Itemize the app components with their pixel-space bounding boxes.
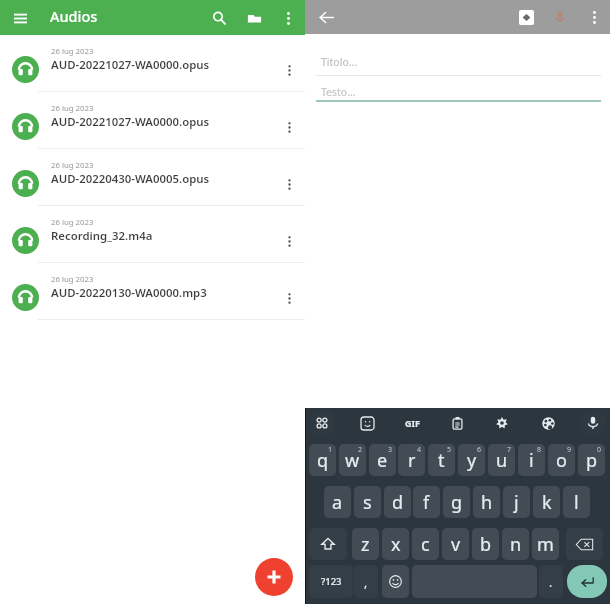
staticText: Audios — [50, 6, 98, 26]
staticText: , — [364, 574, 368, 590]
button[interactable]: h — [473, 486, 500, 518]
button[interactable]: o — [548, 444, 575, 476]
button[interactable]: u — [488, 444, 515, 476]
button[interactable]: Item options — [277, 58, 301, 82]
staticText: h — [481, 490, 493, 515]
button[interactable]: g — [443, 486, 470, 518]
button[interactable]: Add — [255, 558, 293, 596]
button[interactable]: 26 lug 2023 — [0, 92, 305, 149]
staticText: v — [451, 532, 461, 557]
button[interactable]: Symbols — [309, 565, 353, 598]
staticText: i — [529, 448, 534, 473]
button[interactable]: Item options — [277, 172, 301, 196]
button[interactable]: grid — [309, 410, 335, 436]
button[interactable]: Enter — [567, 565, 607, 598]
button[interactable]: j — [503, 486, 530, 518]
staticText: c — [421, 532, 430, 557]
button[interactable]: 26 lug 2023 — [0, 35, 305, 92]
staticText: AUD-20221027-WA0000.opus — [51, 57, 210, 73]
button[interactable]: k — [533, 486, 560, 518]
button[interactable]: p — [578, 444, 605, 476]
staticText: n — [510, 532, 522, 557]
button[interactable]: More options — [581, 4, 607, 30]
button[interactable]: Backspace — [566, 528, 603, 560]
staticText: 26 lug 2023 — [51, 217, 94, 228]
button[interactable]: f — [413, 486, 440, 518]
button[interactable]: v — [442, 528, 469, 560]
staticText: GIF — [405, 417, 420, 429]
staticText: g — [451, 490, 463, 515]
staticText: 26 lug 2023 — [51, 103, 94, 114]
button[interactable]: t — [428, 444, 455, 476]
button[interactable]: Menu — [7, 5, 33, 31]
button[interactable]: Shift — [309, 528, 347, 560]
staticText: 6 — [477, 445, 482, 455]
staticText: 9 — [567, 445, 572, 455]
staticText: . — [549, 574, 553, 590]
staticText: 5 — [447, 445, 452, 455]
staticText: s — [363, 490, 372, 515]
button[interactable]: palette — [535, 410, 561, 436]
button[interactable]: Search — [206, 5, 232, 31]
staticText: x — [391, 532, 401, 557]
button[interactable]: Item options — [277, 286, 301, 310]
button[interactable]: y — [458, 444, 485, 476]
staticText: k — [542, 490, 552, 515]
staticText: Testo... — [321, 85, 356, 99]
staticText: a — [332, 490, 343, 515]
staticText: 26 lug 2023 — [51, 160, 94, 171]
button[interactable]: clip — [444, 410, 470, 436]
button[interactable]: d — [384, 486, 411, 518]
button[interactable]: a — [324, 486, 351, 518]
button[interactable]: gear — [489, 410, 515, 436]
button[interactable]: l — [563, 486, 590, 518]
staticText: AUD-20221027-WA0000.opus — [51, 114, 210, 130]
button[interactable]: Back — [313, 4, 339, 30]
staticText: Recording_32.m4a — [51, 228, 153, 244]
button[interactable]: q — [309, 444, 336, 476]
button[interactable]: sticker — [354, 410, 380, 436]
button[interactable]: mic — [580, 410, 606, 436]
button[interactable]: n — [502, 528, 529, 560]
button[interactable]: . — [539, 565, 563, 598]
button[interactable]: Save — [513, 4, 539, 30]
staticText: ?123 — [321, 575, 342, 588]
staticText: e — [377, 448, 388, 473]
button[interactable]: 26 lug 2023 — [0, 149, 305, 206]
button[interactable]: b — [472, 528, 499, 560]
button[interactable]: i — [518, 444, 545, 476]
button[interactable]: Folder — [241, 5, 267, 31]
button[interactable]: c — [412, 528, 439, 560]
staticText: 0 — [597, 445, 602, 455]
button[interactable]: s — [354, 486, 381, 518]
button[interactable]: r — [398, 444, 425, 476]
button[interactable]: 26 lug 2023 — [0, 263, 305, 320]
staticText: m — [537, 532, 554, 557]
staticText: f — [423, 490, 430, 515]
staticText: t — [438, 448, 445, 473]
button[interactable]: 26 lug 2023 — [0, 206, 305, 263]
button[interactable]: , — [354, 565, 378, 598]
staticText: w — [345, 448, 360, 473]
staticText: 8 — [537, 445, 542, 455]
button[interactable]: Item options — [277, 115, 301, 139]
button[interactable]: More options — [275, 5, 301, 31]
staticText: q — [317, 448, 329, 473]
staticText: l — [574, 490, 579, 515]
button[interactable]: m — [532, 528, 559, 560]
staticText: 1 — [328, 445, 333, 455]
button[interactable]: e — [369, 444, 396, 476]
button[interactable]: gif — [399, 410, 425, 436]
button[interactable]: x — [382, 528, 409, 560]
staticText: z — [361, 532, 370, 557]
staticText: 4 — [417, 445, 422, 455]
button[interactable]: Emoji — [382, 565, 409, 598]
staticText: u — [496, 448, 508, 473]
staticText: 3 — [388, 445, 393, 455]
button[interactable]: z — [352, 528, 379, 560]
button[interactable]: w — [339, 444, 366, 476]
button[interactable]: Record — [547, 4, 573, 30]
button[interactable]: Item options — [277, 229, 301, 253]
staticText: 26 lug 2023 — [51, 274, 94, 285]
